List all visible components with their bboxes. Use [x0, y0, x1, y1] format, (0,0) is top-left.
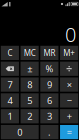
staticText: 7 [7, 78, 12, 91]
button[interactable]: 2 [21, 109, 39, 123]
button[interactable]: MR [40, 46, 58, 60]
button[interactable]: MC [21, 46, 39, 60]
staticText: 3 [47, 110, 52, 122]
staticText: 5 [27, 94, 32, 107]
staticText: ± [27, 63, 32, 75]
staticText: MR [43, 48, 55, 58]
staticText: 0 [65, 21, 76, 47]
staticText: 4 [7, 94, 12, 107]
button[interactable]: 6 [40, 93, 58, 107]
button[interactable]: 5 [21, 93, 39, 107]
button[interactable]: 1 [1, 109, 19, 123]
button[interactable]: 0 [1, 125, 39, 139]
staticText: 2 [27, 110, 32, 122]
staticText: = [67, 126, 72, 138]
button[interactable]: Backspace [1, 62, 19, 76]
button[interactable]: Divide [60, 62, 78, 76]
staticText: + [67, 110, 72, 122]
button[interactable]: − [60, 93, 78, 107]
button[interactable]: M+ [60, 46, 78, 60]
button[interactable]: % [40, 62, 58, 76]
button[interactable]: = [60, 125, 78, 139]
staticText: × [67, 78, 72, 91]
staticText: M+ [63, 48, 75, 58]
button[interactable]: ± [21, 62, 39, 76]
button[interactable]: . [40, 125, 58, 139]
button[interactable]: 8 [21, 77, 39, 92]
staticText: − [67, 94, 72, 107]
staticText: % [45, 63, 53, 75]
staticText: C [7, 48, 12, 58]
button[interactable]: 9 [40, 77, 58, 92]
button[interactable]: × [60, 77, 78, 92]
staticText: 1 [7, 110, 12, 122]
button[interactable]: 3 [40, 109, 58, 123]
button[interactable]: 4 [1, 93, 19, 107]
button[interactable]: + [60, 109, 78, 123]
button[interactable]: 7 [1, 77, 19, 92]
staticText: . [48, 126, 51, 138]
staticText: 6 [47, 94, 52, 107]
staticText: 8 [27, 78, 32, 91]
staticText: MC [24, 48, 36, 58]
staticText: 9 [47, 78, 52, 91]
button[interactable]: C [1, 46, 19, 60]
staticText: 0 [17, 126, 22, 138]
